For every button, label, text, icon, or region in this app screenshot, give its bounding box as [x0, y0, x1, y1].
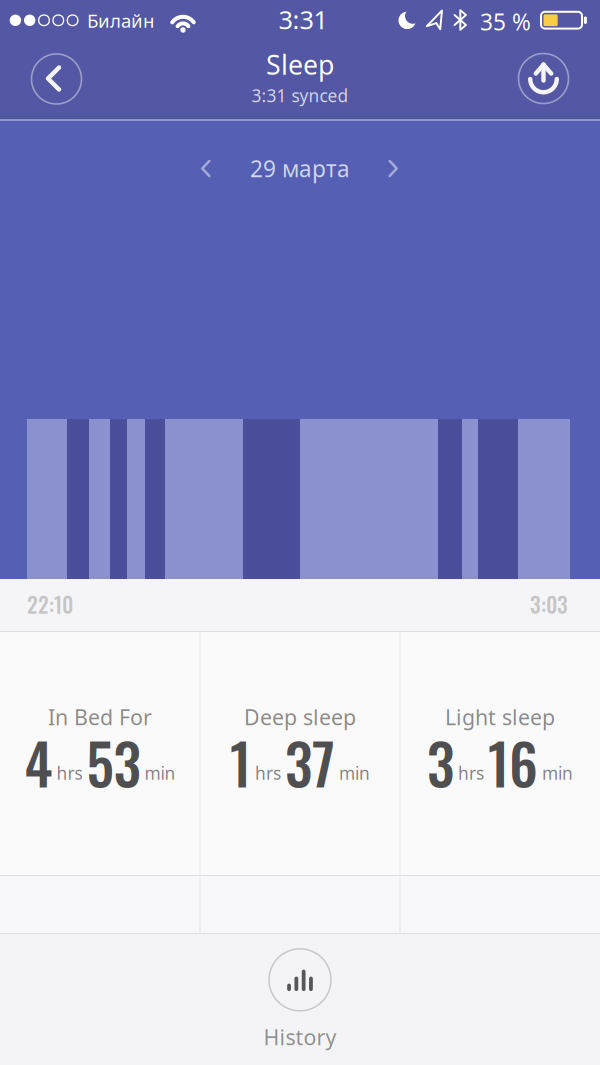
button[interactable]: Previous day	[183, 146, 227, 190]
staticText: 29 марта	[250, 153, 350, 183]
staticText: 53	[86, 721, 140, 803]
staticText: 35 %	[480, 7, 531, 37]
staticText: 3:31	[278, 3, 327, 36]
staticText: 1	[230, 721, 251, 803]
staticText: 4	[24, 721, 52, 803]
staticText: History	[263, 1023, 336, 1051]
button[interactable]: History	[263, 949, 336, 1051]
staticText: hrs	[255, 761, 281, 784]
staticText: 37	[285, 721, 335, 803]
staticText: min	[542, 761, 573, 784]
staticText: hrs	[458, 761, 484, 784]
staticText: 16	[488, 721, 538, 803]
button[interactable]: Back	[28, 51, 84, 107]
staticText: 22:10	[27, 588, 73, 620]
staticText: 3:03	[530, 588, 568, 620]
staticText: Sleep	[266, 47, 334, 82]
staticText: In Bed For	[48, 703, 152, 731]
staticText: hrs	[56, 761, 82, 784]
staticText: 3	[427, 721, 454, 803]
staticText: min	[339, 761, 370, 784]
staticText: Deep sleep	[244, 703, 356, 731]
staticText: Light sleep	[445, 703, 555, 731]
staticText: min	[144, 761, 175, 784]
staticText: 3:31 synced	[251, 84, 348, 107]
staticText: Билайн	[87, 8, 154, 33]
button[interactable]: Share	[515, 50, 571, 106]
button[interactable]: Next day	[371, 146, 415, 190]
